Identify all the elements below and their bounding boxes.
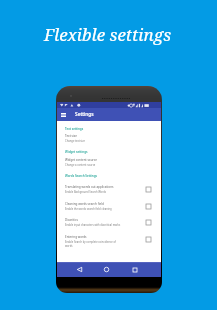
staticText: Enable input characters with diacritical…	[65, 223, 155, 227]
button[interactable]: Text size	[57, 134, 161, 139]
staticText: Cleaning words search field	[65, 202, 104, 206]
staticText: Change text size	[65, 139, 85, 143]
staticText: Entering words	[65, 235, 87, 239]
button[interactable]: Open navigation menu	[57, 108, 70, 121]
staticText: Widget settings	[65, 150, 88, 154]
button[interactable]: Recent apps	[126, 262, 144, 277]
staticText: Diacritics	[65, 218, 78, 222]
staticText: Text size	[65, 134, 77, 138]
staticText: Enable Background Search Words	[65, 190, 155, 194]
staticText: Settings	[75, 111, 94, 118]
staticText: Translating words out applications	[65, 185, 114, 189]
button[interactable]: Diacritics	[57, 218, 161, 234]
button[interactable]: Cleaning words search field	[57, 202, 161, 218]
staticText: Enable the words search field cleaning	[65, 207, 155, 211]
staticText: Enable Search by complete coincidence of…	[65, 240, 120, 248]
staticText: Words Search Settings	[65, 174, 98, 178]
button[interactable]: Widget content source	[57, 158, 161, 163]
staticText: Text settings	[65, 127, 84, 131]
button[interactable]: Entering words	[57, 235, 161, 251]
button[interactable]: Back	[70, 262, 88, 277]
staticText: Change a content source	[65, 163, 96, 167]
staticText: Flexible settings	[44, 23, 172, 46]
staticText: Widget content source	[65, 158, 97, 162]
button[interactable]: Translating words out applications	[57, 185, 161, 201]
button[interactable]: Home	[97, 262, 115, 277]
